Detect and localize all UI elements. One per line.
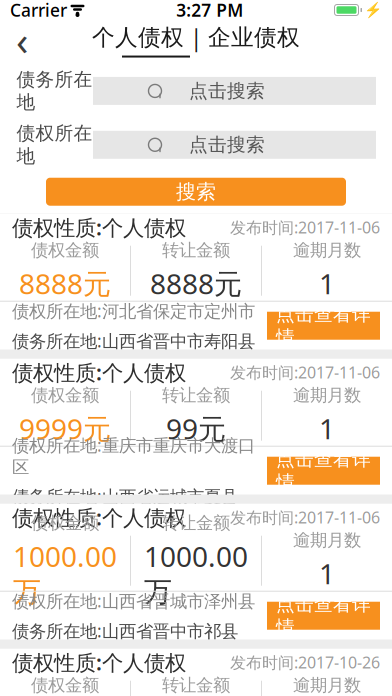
staticText: 点击查看详情 bbox=[276, 448, 371, 494]
staticText: 逾期月数 bbox=[293, 674, 361, 696]
staticText: Carrier bbox=[10, 0, 67, 21]
button[interactable]: 企业债权 bbox=[208, 24, 300, 51]
staticText: ‹ bbox=[16, 13, 28, 66]
button[interactable]: Back bbox=[0, 20, 44, 60]
button[interactable]: 点击查看详情 bbox=[267, 312, 380, 340]
staticText: 逾期月数 bbox=[293, 384, 361, 406]
staticText: 转让金额 bbox=[162, 239, 230, 261]
staticText: 发布时间:2017-10-26 bbox=[230, 652, 380, 673]
staticText: 1000.00万 bbox=[13, 538, 117, 609]
staticText: 发布时间:2017-11-06 bbox=[230, 362, 380, 383]
staticText: 债权性质:个人债权 bbox=[12, 213, 186, 241]
staticText: 个人债权 bbox=[92, 24, 184, 51]
staticText: 债务所在地:山西省晋中市祁县 bbox=[12, 619, 238, 642]
staticText: 债权金额 bbox=[31, 512, 99, 534]
staticText: 1 bbox=[319, 555, 335, 592]
staticText: 点击查看详情 bbox=[276, 303, 371, 349]
staticText: 9999元 bbox=[19, 410, 111, 447]
staticText: 点击查看详情 bbox=[276, 593, 371, 639]
button[interactable]: 搜索 bbox=[46, 178, 346, 206]
button[interactable]: 点击搜索 bbox=[93, 131, 376, 159]
staticText: 债权性质:个人债权 bbox=[12, 648, 186, 676]
staticText: 债权性质:个人债权 bbox=[12, 503, 186, 531]
staticText: 债权金额 bbox=[31, 674, 99, 696]
staticText: 3:27 PM bbox=[176, 0, 243, 21]
staticText: 1 bbox=[319, 410, 335, 447]
staticText: 转让金额 bbox=[162, 384, 230, 406]
staticText bbox=[65, 0, 71, 25]
staticText: ⚡ bbox=[364, 2, 382, 18]
button[interactable]: 点击查看详情 bbox=[267, 602, 380, 630]
staticText: 转让金额 bbox=[162, 512, 230, 534]
staticText: 发布时间:2017-11-06 bbox=[230, 217, 380, 238]
staticText: 债务所在地 bbox=[16, 68, 92, 114]
staticText: 1000.00万 bbox=[144, 538, 248, 609]
staticText: 债权所在地:河北省保定市定州市 bbox=[12, 299, 255, 322]
staticText: 发布时间:2017-11-06 bbox=[230, 507, 380, 528]
staticText: 逾期月数 bbox=[293, 239, 361, 261]
staticText: 企业债权 bbox=[208, 24, 300, 51]
staticText: 债权金额 bbox=[31, 239, 99, 261]
staticText: 1 bbox=[319, 265, 335, 302]
staticText: 债务所在地:山西省晋中市寿阳县 bbox=[12, 329, 255, 352]
staticText: 8888元 bbox=[19, 265, 111, 302]
staticText: 债权所在地 bbox=[16, 122, 92, 168]
button[interactable]: 点击查看详情 bbox=[267, 457, 380, 485]
staticText: 点击搜索 bbox=[189, 79, 265, 102]
staticText: 点击搜索 bbox=[189, 133, 265, 156]
staticText: 99元 bbox=[166, 410, 226, 447]
staticText: 债权所在地:重庆市重庆市大渡口区 bbox=[12, 434, 255, 478]
button[interactable]: 点击搜索 bbox=[93, 77, 376, 105]
staticText: 债权所在地:山西省晋城市泽州县 bbox=[12, 589, 255, 612]
staticText: 逾期月数 bbox=[293, 529, 361, 551]
staticText: 转让金额 bbox=[162, 674, 230, 696]
staticText: 债权金额 bbox=[31, 384, 99, 406]
button[interactable]: 个人债权 bbox=[92, 24, 184, 51]
staticText: 债务所在地:山西省运城市夏县 bbox=[12, 485, 238, 508]
staticText: 债权性质:个人债权 bbox=[12, 358, 186, 386]
staticText: 搜索 bbox=[176, 179, 216, 204]
staticText: | bbox=[184, 22, 208, 52]
staticText: 8888元 bbox=[150, 265, 242, 302]
